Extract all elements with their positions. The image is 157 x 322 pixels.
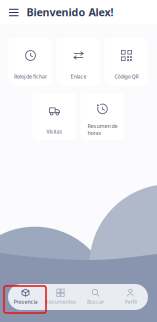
staticText: Reloj de fichar: [14, 73, 47, 80]
button[interactable]: Código QR: [104, 38, 148, 85]
staticText: Documentos: [44, 298, 76, 305]
button[interactable]: Resumen de horas: [80, 93, 124, 140]
button[interactable]: Reloj de fichar: [8, 38, 52, 85]
staticText: Enlace: [70, 73, 86, 80]
staticText: Bienvenido Alex!: [26, 5, 113, 19]
staticText: Buscar: [87, 298, 104, 305]
button[interactable]: Documentos: [43, 284, 78, 310]
button[interactable]: Buscar: [78, 284, 113, 310]
button[interactable]: Perfil: [113, 284, 148, 310]
staticText: Visitas: [46, 128, 62, 135]
staticText: Perfil: [124, 298, 136, 305]
staticText: Resumen de horas: [87, 122, 117, 137]
staticText: Código QR: [114, 73, 138, 80]
staticText: Presencia: [13, 298, 37, 305]
button[interactable]: Menu: [4, 3, 23, 21]
button[interactable]: Enlace: [56, 38, 100, 85]
button[interactable]: Presencia: [8, 284, 43, 310]
button[interactable]: Visitas: [32, 93, 76, 140]
